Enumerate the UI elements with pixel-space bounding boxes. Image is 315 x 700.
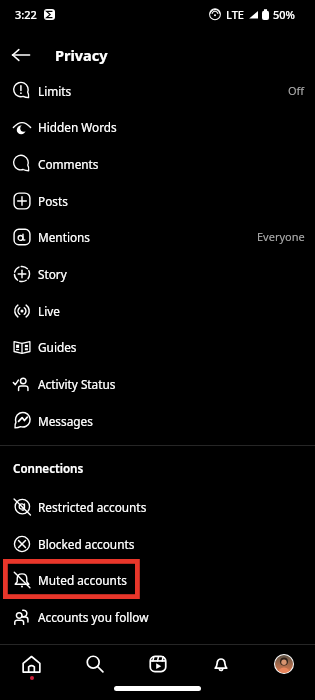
- button[interactable]: Blocked accounts: [0, 525, 315, 562]
- staticText: Messages: [38, 413, 93, 429]
- staticText: LTE: [226, 7, 244, 22]
- staticText: Muted accounts: [38, 572, 127, 588]
- staticText: 3:22: [15, 7, 37, 22]
- button[interactable]: Muted accounts: [0, 561, 315, 598]
- button[interactable]: Restricted accounts: [0, 488, 315, 525]
- staticText: Accounts you follow: [38, 609, 149, 625]
- button[interactable]: Search: [63, 645, 126, 683]
- button[interactable]: Messages: [0, 402, 315, 439]
- button[interactable]: Live: [0, 292, 315, 329]
- button[interactable]: Hidden Words: [0, 108, 315, 145]
- button[interactable]: Profile: [252, 645, 315, 683]
- staticText: Mentions: [38, 229, 91, 245]
- button[interactable]: Notifications: [189, 645, 252, 683]
- staticText: Live: [38, 303, 60, 319]
- staticText: Everyone: [257, 229, 305, 244]
- staticText: Activity Status: [38, 376, 116, 392]
- staticText: Comments: [38, 156, 99, 172]
- staticText: Story: [38, 266, 67, 282]
- staticText: Connections: [13, 461, 84, 477]
- staticText: Guides: [38, 339, 77, 355]
- button[interactable]: Posts: [0, 182, 315, 219]
- staticText: 50%: [273, 7, 295, 22]
- staticText: Posts: [38, 193, 68, 209]
- button[interactable]: Reels: [126, 645, 189, 683]
- staticText: Limits: [38, 83, 72, 99]
- button[interactable]: Accounts you follow: [0, 598, 315, 635]
- staticText: Restricted accounts: [38, 499, 147, 515]
- button[interactable]: Story: [0, 255, 315, 292]
- button[interactable]: Activity Status: [0, 365, 315, 402]
- button[interactable]: Mentions: [0, 218, 315, 255]
- staticText: Off: [288, 83, 305, 98]
- button[interactable]: Back: [6, 40, 36, 70]
- staticText: Hidden Words: [38, 119, 117, 135]
- button[interactable]: Guides: [0, 328, 315, 365]
- button[interactable]: Limits: [0, 72, 315, 109]
- staticText: Blocked accounts: [38, 536, 135, 552]
- button[interactable]: Comments: [0, 145, 315, 182]
- button[interactable]: Home: [0, 645, 63, 683]
- staticText: Privacy: [55, 45, 108, 65]
